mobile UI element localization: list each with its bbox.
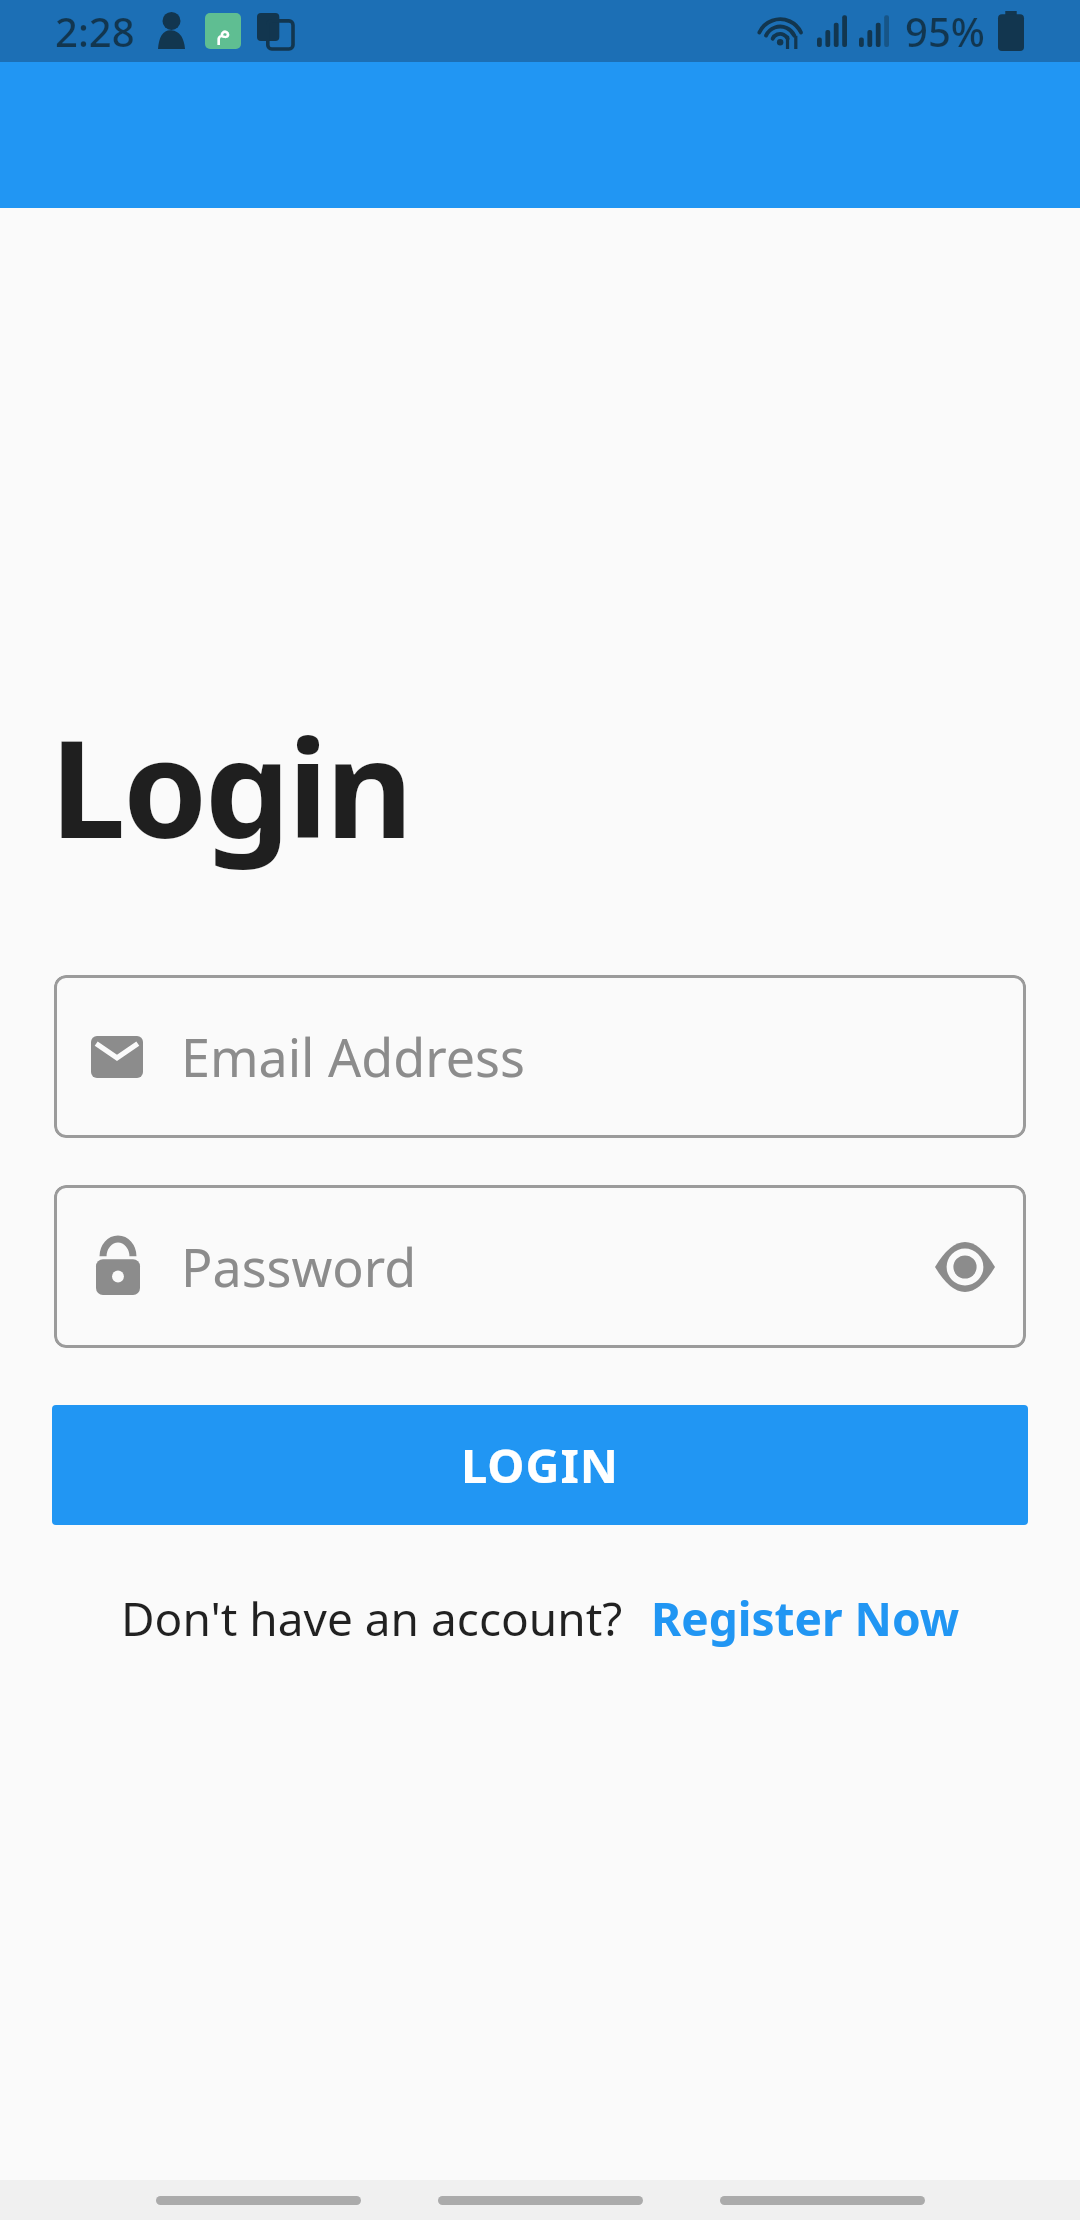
staticText: Login	[50, 694, 411, 878]
button[interactable]	[920, 1222, 1010, 1312]
button[interactable]	[438, 2196, 643, 2205]
button[interactable]: Password	[54, 1185, 1026, 1348]
staticText: Email Address	[181, 1021, 525, 1092]
button[interactable]: Register Now	[651, 1587, 960, 1650]
button[interactable]: Email Address	[54, 975, 1026, 1138]
staticText: 2:28	[55, 4, 135, 58]
staticText: Password	[181, 1231, 417, 1302]
button[interactable]	[720, 2196, 925, 2205]
button[interactable]	[156, 2196, 361, 2205]
staticText: Don't have an account?	[121, 1587, 623, 1650]
staticText: Register Now	[651, 1587, 960, 1650]
button[interactable]: LOGIN	[52, 1405, 1028, 1525]
staticText: LOGIN	[461, 1433, 620, 1497]
staticText: م	[216, 17, 231, 45]
staticText: 95%	[905, 4, 985, 58]
